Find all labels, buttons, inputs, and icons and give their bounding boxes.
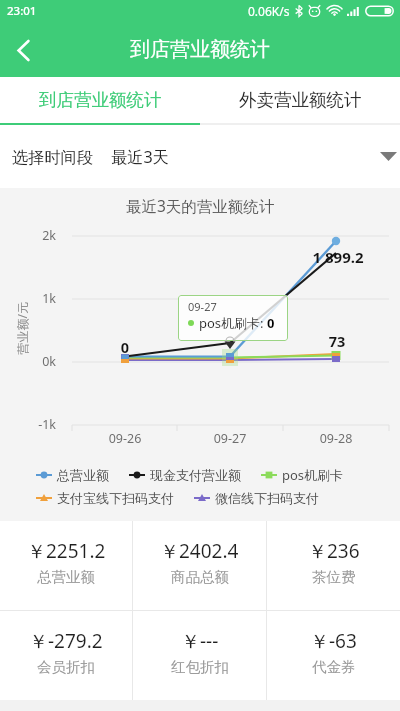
staticText: ￥236: [308, 538, 360, 564]
staticText: 总营业额: [37, 568, 95, 586]
staticText: 1k: [19, 290, 56, 307]
staticText: pos机刷卡: [282, 466, 344, 484]
staticText: 23:01: [7, 3, 37, 19]
staticText: 茶位费: [312, 568, 356, 586]
button[interactable]: 选择时间段: [12, 125, 397, 188]
staticText: ￥-63: [310, 628, 357, 654]
button[interactable]: ￥2402.4: [133, 521, 266, 610]
staticText: 选择时间段: [12, 147, 93, 167]
button[interactable]: ￥236: [267, 521, 400, 610]
button[interactable]: ￥2251.2: [0, 521, 132, 610]
staticText: 到店营业额统计: [130, 37, 270, 62]
staticText: 总营业额: [57, 467, 109, 483]
staticText: 2k: [19, 227, 56, 244]
staticText: ￥2402.4: [160, 538, 239, 564]
staticText: 1 899.2: [298, 247, 378, 267]
staticText: pos机刷卡:: [199, 314, 267, 332]
staticText: 0.06K/s: [248, 3, 290, 19]
staticText: 09-27: [188, 299, 217, 314]
staticText: 外卖营业额统计: [239, 89, 362, 111]
staticText: 红包折扣: [171, 658, 229, 676]
staticText: 0k: [19, 353, 56, 370]
staticText: 最近3天: [111, 146, 169, 168]
button[interactable]: ￥---: [133, 611, 266, 700]
staticText: 代金券: [312, 658, 356, 676]
staticText: 到店营业额统计: [39, 89, 162, 111]
staticText: 09-27: [200, 430, 260, 447]
staticText: ￥-279.2: [29, 628, 103, 654]
staticText: 73: [297, 331, 377, 351]
staticText: ￥---: [181, 628, 219, 654]
button[interactable]: Back: [0, 27, 46, 73]
staticText: -1k: [19, 416, 56, 433]
staticText: ￥2251.2: [27, 538, 106, 564]
staticText: 09-28: [306, 430, 366, 447]
staticText: 0: [267, 314, 275, 332]
staticText: 最近3天的营业额统计: [126, 195, 275, 216]
staticText: 营业额/元: [13, 301, 29, 354]
staticText: 现金支付营业额: [150, 467, 241, 483]
staticText: 支付宝线下扫码支付: [57, 490, 174, 506]
staticText: 0: [85, 337, 165, 357]
button[interactable]: ￥-63: [267, 611, 400, 700]
staticText: 商品总额: [171, 568, 229, 586]
button[interactable]: ￥-279.2: [0, 611, 132, 700]
staticText: 09-26: [95, 430, 155, 447]
staticText: 会员折扣: [37, 658, 95, 676]
button[interactable]: 外卖营业额统计: [200, 77, 400, 123]
staticText: 微信线下扫码支付: [215, 490, 319, 506]
button[interactable]: 到店营业额统计: [0, 77, 200, 123]
